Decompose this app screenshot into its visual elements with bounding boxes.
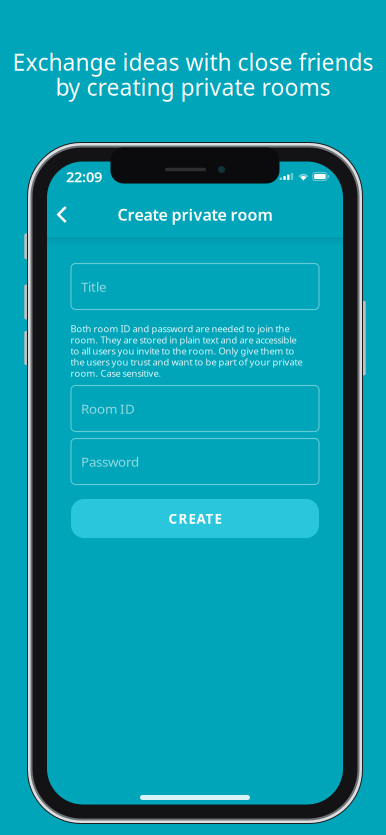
button[interactable]: Back bbox=[45, 197, 79, 231]
button[interactable]: Password bbox=[71, 438, 319, 484]
button[interactable]: Title bbox=[71, 263, 319, 309]
staticText: Title bbox=[81, 278, 107, 295]
staticText: CREATE bbox=[168, 510, 221, 527]
staticText: 22:09 bbox=[66, 167, 102, 186]
staticText: Both room ID and password are needed to … bbox=[70, 322, 302, 379]
staticText: Password bbox=[81, 453, 139, 470]
staticText: by creating private rooms bbox=[55, 72, 330, 102]
button[interactable]: CREATE bbox=[71, 499, 319, 538]
staticText: Exchange ideas with close friends bbox=[12, 47, 373, 77]
staticText: Room ID bbox=[81, 400, 135, 417]
button[interactable]: Room ID bbox=[71, 385, 319, 431]
staticText: Create private room bbox=[117, 204, 272, 225]
